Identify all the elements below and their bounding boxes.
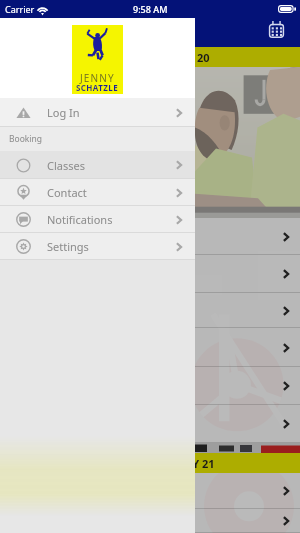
staticText: MAY 20 bbox=[170, 50, 210, 65]
staticText: Settings bbox=[47, 239, 89, 254]
button[interactable] bbox=[0, 255, 300, 293]
staticText: Carrier bbox=[5, 3, 35, 15]
button[interactable] bbox=[0, 328, 300, 367]
button[interactable] bbox=[0, 473, 300, 509]
button[interactable]: Calendar bbox=[264, 17, 288, 41]
staticText: Log In bbox=[47, 105, 80, 120]
staticText: Classes bbox=[47, 158, 85, 173]
staticText: Contact bbox=[47, 185, 87, 200]
button[interactable]: Classes bbox=[0, 151, 195, 179]
staticText: 9:58 AM bbox=[133, 3, 168, 15]
staticText: JENNY bbox=[80, 71, 115, 85]
button[interactable] bbox=[0, 293, 300, 328]
staticText: MAY 21 bbox=[175, 456, 215, 471]
staticText: Notifications bbox=[47, 212, 113, 227]
button[interactable] bbox=[0, 218, 300, 255]
staticText: Booking bbox=[9, 133, 43, 145]
button[interactable]: Notifications bbox=[0, 206, 195, 233]
button[interactable] bbox=[0, 367, 300, 405]
button[interactable]: Contact bbox=[0, 179, 195, 206]
staticText: SCHATZLE bbox=[76, 82, 119, 93]
button[interactable]: Settings bbox=[0, 233, 195, 260]
button[interactable] bbox=[0, 405, 300, 443]
button[interactable] bbox=[0, 509, 300, 533]
button[interactable]: Log In bbox=[0, 98, 195, 127]
